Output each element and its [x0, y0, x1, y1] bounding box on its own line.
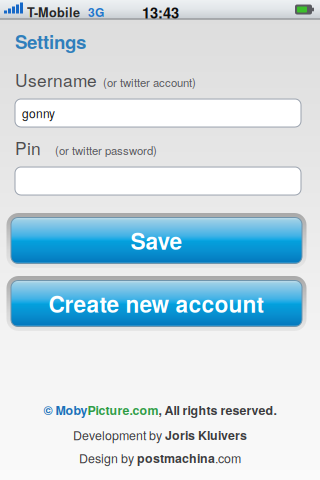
staticText: Save — [130, 224, 182, 257]
staticText: © — [43, 401, 55, 419]
staticText: (or twitter account) — [103, 74, 196, 90]
button[interactable]: Create new account — [6, 276, 306, 331]
staticText: (or twitter password) — [55, 142, 157, 158]
button[interactable]: Save — [6, 213, 306, 268]
staticText: Moby — [55, 401, 87, 419]
staticText: Create new account — [48, 287, 264, 320]
staticText: 13:43 — [142, 2, 179, 23]
staticText: gonny — [22, 104, 55, 122]
staticText: Joris Kluivers — [165, 426, 247, 444]
staticText: , All rights reserved. — [158, 401, 276, 419]
staticText: Picture.com — [87, 401, 158, 419]
staticText: postmachina — [137, 449, 215, 467]
staticText: Settings — [15, 28, 86, 55]
staticText: .com — [215, 449, 241, 467]
staticText: Pin — [15, 135, 41, 160]
staticText: T-Mobile — [27, 3, 80, 21]
staticText: 3G — [88, 3, 104, 21]
staticText: Username — [15, 67, 97, 92]
staticText: Design by — [79, 449, 137, 467]
staticText: Development by — [73, 426, 165, 444]
